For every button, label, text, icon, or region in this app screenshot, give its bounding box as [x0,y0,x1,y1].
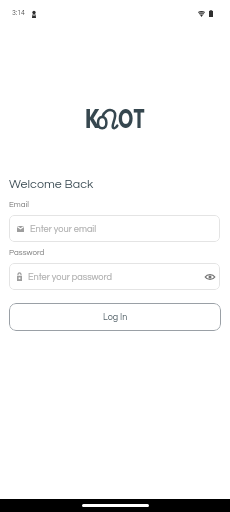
staticText: Enter your password [28,272,113,281]
button[interactable]: Log In [9,303,221,331]
staticText: K [85,101,101,135]
staticText: Welcome Back [9,178,94,191]
staticText: OT [118,101,145,135]
button[interactable]: Enter your email [9,215,220,242]
staticText: Password [9,248,45,256]
staticText: 3:14 [12,9,25,16]
other: Show password [205,274,215,280]
staticText: Enter your email [30,224,97,233]
staticText: Log In [103,313,128,322]
button[interactable]: Enter your password [9,263,220,290]
staticText: Email [9,200,29,208]
